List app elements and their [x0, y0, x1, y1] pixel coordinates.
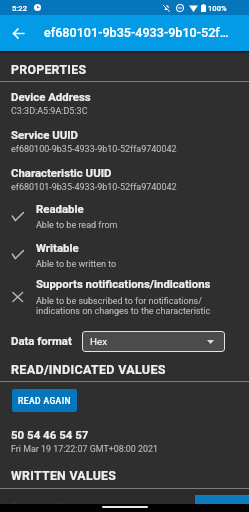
staticText: Readable	[36, 202, 84, 215]
staticText: Characteristic UUID	[11, 166, 112, 179]
staticText: 50 54 46 54 57	[11, 428, 89, 441]
staticText: PROPERTIES	[11, 63, 87, 77]
staticText: Writable	[36, 241, 79, 254]
staticText: Service UUID	[11, 128, 78, 141]
staticText: READ AGAIN	[18, 396, 71, 406]
staticText: Write value (Hex)	[11, 501, 76, 511]
button[interactable]: Navigate up	[6, 21, 30, 45]
staticText: Fri Mar 19 17:22:07 GMT+08:00 2021	[11, 444, 159, 454]
staticText: Data format	[11, 334, 72, 347]
staticText: Supports notifications/indications	[36, 277, 211, 290]
staticText: 5:22	[12, 4, 27, 13]
staticText: Able to be read from	[36, 220, 118, 231]
staticText: C3:3D:A5:9A:D5:3C	[11, 106, 88, 117]
staticText: ef680101-9b35-4933-9b10-52f…	[44, 25, 229, 40]
staticText: Device Address	[11, 90, 91, 103]
staticText: ef680100-9b35-4933-9b10-52ffa9740042	[11, 144, 177, 155]
staticText: Hex	[90, 336, 108, 347]
staticText: ef680101-9b35-4933-9b10-52ffa9740042	[11, 182, 177, 193]
button[interactable]: Hex	[82, 331, 225, 352]
staticText: READ/INDICATED VALUES	[11, 362, 166, 377]
staticText: 100%	[208, 4, 227, 13]
staticText: Able to be written to	[36, 259, 117, 270]
staticText: WRITTEN VALUES	[11, 469, 117, 483]
button[interactable]: READ AGAIN	[12, 389, 77, 412]
staticText: Able to be subscribed to for notificatio…	[36, 296, 211, 316]
